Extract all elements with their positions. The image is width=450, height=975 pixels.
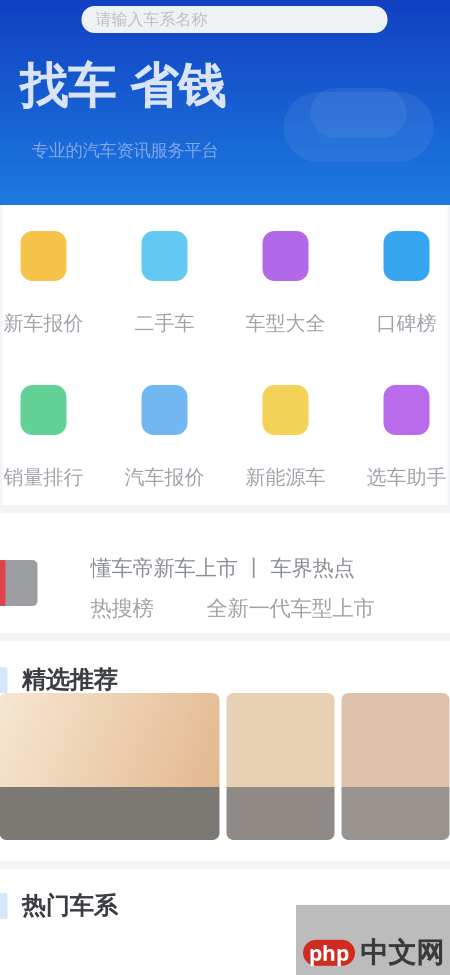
- button[interactable]: 懂车帝新车上市 丨 车界热点: [0, 513, 450, 633]
- staticText: 热搜榜: [90, 595, 153, 621]
- staticText: 懂车帝新车上市 丨 车界热点: [90, 555, 354, 581]
- staticText: 二手车: [134, 311, 194, 336]
- staticText: 选车助手: [366, 465, 446, 490]
- button[interactable]: 新车报价: [2, 231, 84, 331]
- staticText: 销量排行: [3, 465, 83, 490]
- button[interactable]: 汽车报价: [123, 385, 205, 485]
- button[interactable]: 二手车: [123, 231, 205, 331]
- button[interactable]: 新能源车: [244, 385, 326, 485]
- button[interactable]: 车型大全: [244, 231, 326, 331]
- staticText: 车型大全: [245, 311, 325, 336]
- staticText: 请输入车系名称: [95, 10, 207, 29]
- staticText: 新车报价: [3, 311, 83, 336]
- button[interactable]: [341, 693, 449, 840]
- staticText: 热门车系: [21, 891, 117, 921]
- staticText: 精选推荐: [21, 665, 117, 695]
- staticText: 全新一代车型上市: [206, 595, 374, 621]
- staticText: 找车 省钱: [19, 57, 225, 116]
- button[interactable]: [226, 693, 334, 840]
- staticText: 中文网: [360, 936, 444, 970]
- button[interactable]: 请输入车系名称: [81, 6, 387, 33]
- staticText: php: [309, 939, 349, 967]
- staticText: 汽车报价: [124, 465, 204, 490]
- button[interactable]: 选车助手: [365, 385, 447, 485]
- button[interactable]: 口碑榜: [365, 231, 447, 331]
- button[interactable]: [0, 693, 219, 840]
- staticText: 专业的汽车资讯服务平台: [31, 140, 218, 161]
- staticText: 口碑榜: [376, 311, 436, 336]
- button[interactable]: 销量排行: [2, 385, 84, 485]
- staticText: 新能源车: [245, 465, 325, 490]
